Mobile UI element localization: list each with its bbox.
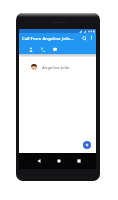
button[interactable]: Calls (37, 45, 49, 54)
button[interactable]: Search (80, 34, 88, 42)
button[interactable]: Messages (49, 45, 61, 54)
button[interactable]: New call (83, 141, 91, 149)
button[interactable]: More options (88, 34, 95, 41)
staticText: Angelina Jolie (42, 64, 70, 70)
button[interactable]: Recents (74, 156, 84, 166)
staticText: Call From Angelina Jolie... (22, 35, 80, 41)
button[interactable]: Angelina Jolie (19, 57, 96, 77)
button[interactable]: Home (54, 156, 64, 166)
button[interactable]: Contacts (25, 45, 37, 54)
button[interactable]: Back (34, 156, 44, 166)
